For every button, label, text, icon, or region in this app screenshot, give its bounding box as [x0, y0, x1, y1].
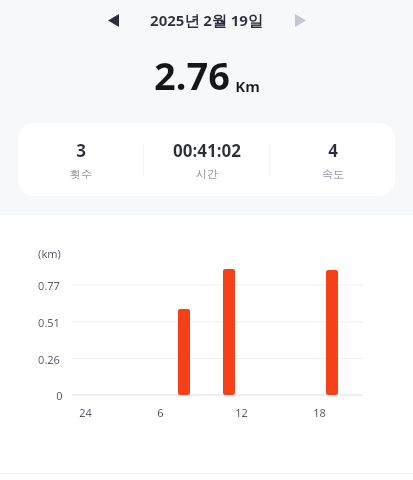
staticText: 0.51: [38, 315, 60, 330]
staticText: 4: [328, 139, 338, 162]
staticText: 2.76: [154, 49, 230, 101]
staticText: 0.77: [38, 278, 60, 293]
staticText: 횟수: [70, 167, 92, 181]
staticText: (km): [38, 246, 61, 261]
staticText: 0: [56, 388, 63, 403]
button[interactable]: 00:41:02: [144, 139, 269, 181]
staticText: 18: [313, 405, 326, 420]
staticText: 시간: [196, 167, 218, 181]
button[interactable]: Previous day: [98, 7, 128, 33]
staticText: 24: [79, 405, 92, 420]
button[interactable]: 4: [270, 139, 395, 181]
staticText: 00:41:02: [173, 139, 241, 162]
button[interactable]: Next day: [285, 7, 315, 33]
staticText: 6: [157, 405, 164, 420]
staticText: 12: [235, 405, 248, 420]
staticText: 0.26: [38, 352, 60, 367]
staticText: Km: [235, 76, 260, 96]
staticText: 속도: [322, 167, 344, 181]
button[interactable]: 3: [18, 139, 143, 181]
staticText: 3: [76, 139, 86, 162]
staticText: 2025년 2월 19일: [150, 10, 263, 30]
button[interactable]: 3: [18, 123, 395, 196]
